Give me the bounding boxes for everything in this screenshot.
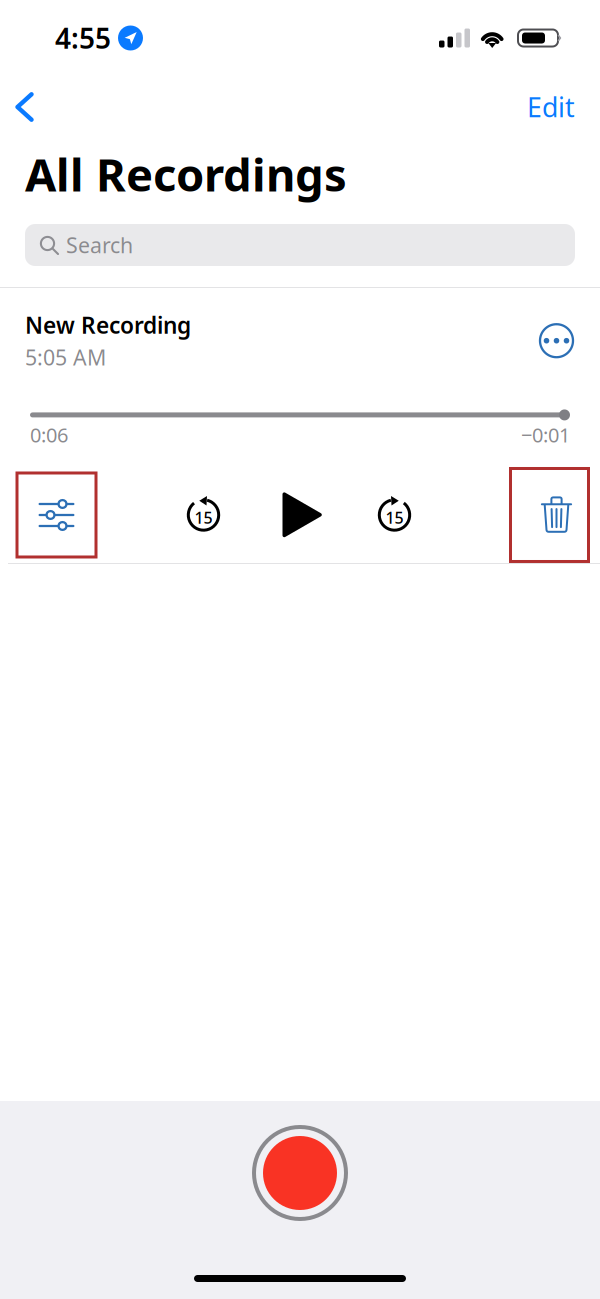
button[interactable]: Skip back 15 seconds: [186, 496, 221, 533]
staticText: 4:55: [55, 19, 111, 57]
button[interactable]: Search: [0, 224, 600, 266]
staticText: 0:06: [30, 421, 68, 448]
staticText: New Recording: [25, 310, 191, 340]
button[interactable]: Edit: [503, 76, 600, 138]
button[interactable]: Back: [0, 76, 58, 138]
button[interactable]: Delete: [510, 468, 588, 561]
staticText: 15: [194, 507, 212, 528]
staticText: 15: [385, 507, 403, 528]
staticText: Edit: [527, 89, 575, 125]
staticText: 5:05 AM: [25, 343, 106, 371]
staticText: −0:01: [521, 421, 570, 448]
button[interactable]: Play: [282, 493, 321, 537]
button[interactable]: Record: [252, 1125, 348, 1221]
button[interactable]: Skip forward 15 seconds: [377, 496, 412, 533]
staticText: All Recordings: [25, 144, 347, 204]
staticText: Search: [66, 231, 133, 259]
button[interactable]: Edit Recording: [17, 473, 96, 557]
button[interactable]: More: [539, 323, 574, 358]
